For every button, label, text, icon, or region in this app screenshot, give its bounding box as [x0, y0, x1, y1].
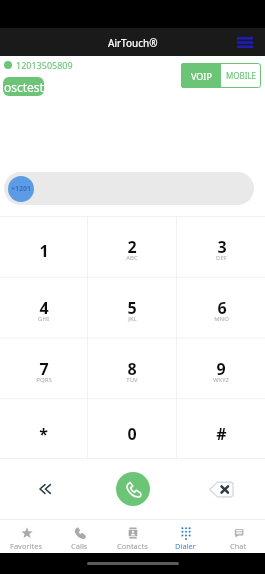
staticText: GHI: [38, 315, 49, 323]
staticText: PQRS: [36, 376, 52, 384]
button[interactable]: 5: [88, 276, 176, 337]
button[interactable]: Calls: [53, 520, 106, 553]
button[interactable]: 4: [0, 276, 87, 337]
button[interactable]: Previous number: [0, 459, 89, 519]
staticText: +1201: [11, 184, 32, 194]
button[interactable]: MOBILE: [221, 63, 261, 88]
button[interactable]: 1: [0, 216, 87, 276]
staticText: 9: [216, 358, 226, 380]
button[interactable]: *: [0, 398, 87, 459]
staticText: AirTouch®: [108, 36, 158, 50]
staticText: JKL: [128, 315, 137, 323]
staticText: MOBILE: [226, 70, 257, 81]
button[interactable]: Backspace: [177, 459, 265, 519]
staticText: 3: [217, 236, 227, 258]
staticText: 1: [39, 240, 49, 262]
staticText: Chat: [230, 541, 247, 551]
staticText: osctest: [4, 79, 44, 95]
button[interactable]: 6: [177, 276, 265, 337]
button[interactable]: Contacts: [106, 520, 159, 553]
staticText: #: [216, 423, 227, 445]
staticText: Dialer: [175, 541, 196, 551]
staticText: Calls: [71, 541, 88, 551]
button[interactable]: 2: [88, 216, 176, 276]
staticText: DEF: [216, 254, 227, 262]
staticText: 2: [127, 236, 137, 258]
staticText: WXYZ: [213, 376, 229, 384]
staticText: 4: [39, 297, 49, 319]
button[interactable]: Dialer: [159, 520, 212, 553]
button[interactable]: Chat: [212, 520, 265, 553]
button[interactable]: Country code: [8, 176, 34, 202]
button[interactable]: Menu: [233, 30, 257, 54]
staticText: TUV: [126, 376, 138, 384]
button[interactable]: osctest: [3, 77, 44, 96]
button[interactable]: 7: [0, 337, 87, 398]
staticText: *: [39, 423, 48, 445]
button[interactable]: VOIP: [181, 63, 221, 88]
button[interactable]: 0: [88, 398, 176, 459]
button[interactable]: 9: [177, 337, 265, 398]
staticText: Contacts: [117, 541, 148, 551]
staticText: 6: [217, 297, 227, 319]
staticText: VOIP: [191, 70, 212, 82]
staticText: 8: [127, 358, 137, 380]
button[interactable]: 8: [88, 337, 176, 398]
button[interactable]: Call: [116, 472, 150, 506]
staticText: 5: [127, 297, 137, 319]
staticText: 0: [127, 423, 137, 445]
staticText: ABC: [126, 254, 138, 262]
staticText: 12013505809: [16, 59, 73, 71]
staticText: 7: [39, 358, 49, 380]
button[interactable]: 3: [177, 216, 265, 276]
staticText: MNO: [214, 315, 229, 323]
button[interactable]: #: [177, 398, 265, 459]
button[interactable]: Favorites: [0, 520, 53, 553]
staticText: Favorites: [10, 541, 43, 551]
